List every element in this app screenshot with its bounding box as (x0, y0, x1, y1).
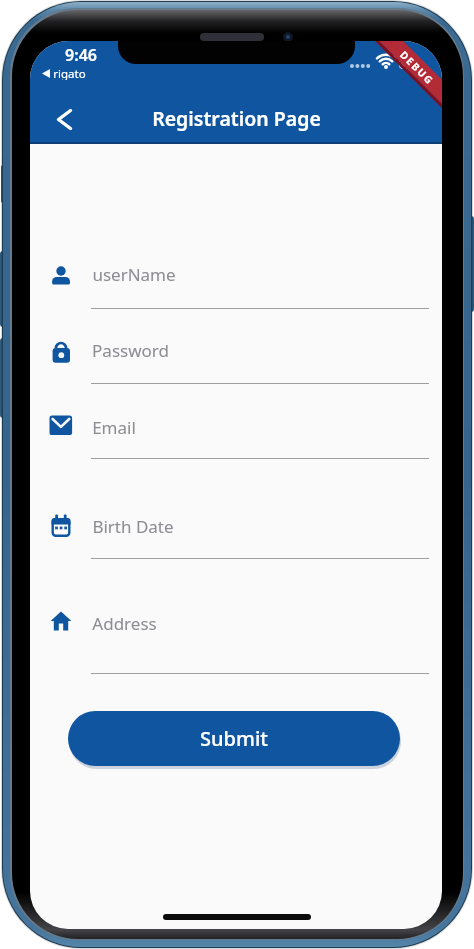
staticText: Email (92, 416, 136, 439)
staticText: DEBUG (397, 47, 437, 88)
staticText: Password (92, 339, 169, 362)
staticText: Registration Page (152, 105, 321, 132)
staticText: Address (92, 612, 157, 635)
button[interactable] (48, 258, 429, 312)
staticText: Birth Date (92, 515, 174, 538)
staticText: 9:46 (65, 44, 97, 65)
staticText: Submit (200, 725, 268, 752)
button[interactable] (48, 335, 429, 387)
staticText: rigato (53, 66, 86, 80)
button[interactable] (48, 410, 429, 462)
staticText: userName (92, 263, 176, 286)
button[interactable] (44, 100, 84, 138)
button[interactable]: Submit (68, 711, 400, 766)
button[interactable] (48, 605, 429, 677)
button[interactable] (48, 510, 429, 562)
